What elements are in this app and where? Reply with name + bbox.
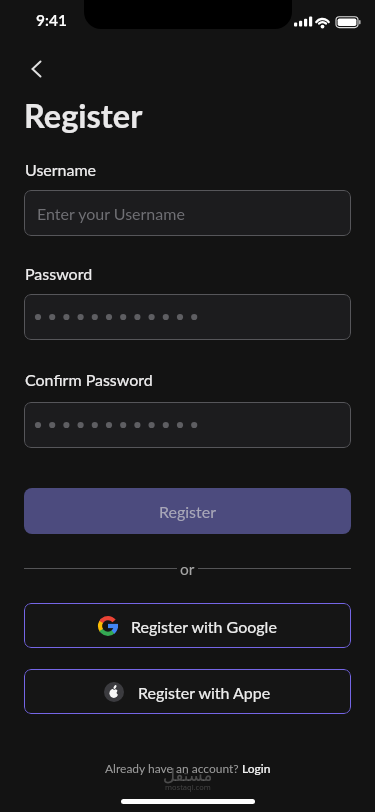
- staticText: or: [180, 560, 195, 576]
- staticText: Enter your Username: [37, 204, 185, 223]
- staticText: Login: [242, 761, 271, 775]
- button[interactable]: [15, 47, 59, 91]
- button[interactable]: [24, 294, 351, 340]
- staticText: mostaql.com: [165, 782, 211, 792]
- staticText: Register with Appe: [138, 683, 271, 702]
- staticText: Already have an account?: [105, 761, 242, 775]
- button[interactable]: Register with Appe: [24, 669, 351, 714]
- staticText: Confirm Password: [25, 370, 153, 389]
- button[interactable]: Enter your Username: [24, 190, 351, 236]
- staticText: Register: [159, 502, 217, 521]
- staticText: Register with Google: [131, 617, 277, 636]
- staticText: Register: [24, 96, 143, 135]
- staticText: 9:41: [36, 11, 67, 30]
- staticText: Password: [25, 264, 93, 283]
- staticText: مستقل: [163, 766, 213, 785]
- button[interactable]: Login: [242, 761, 271, 775]
- staticText: Username: [25, 160, 97, 179]
- button[interactable]: Register with Google: [24, 603, 351, 648]
- button[interactable]: Register: [24, 488, 351, 534]
- button[interactable]: [24, 402, 351, 448]
